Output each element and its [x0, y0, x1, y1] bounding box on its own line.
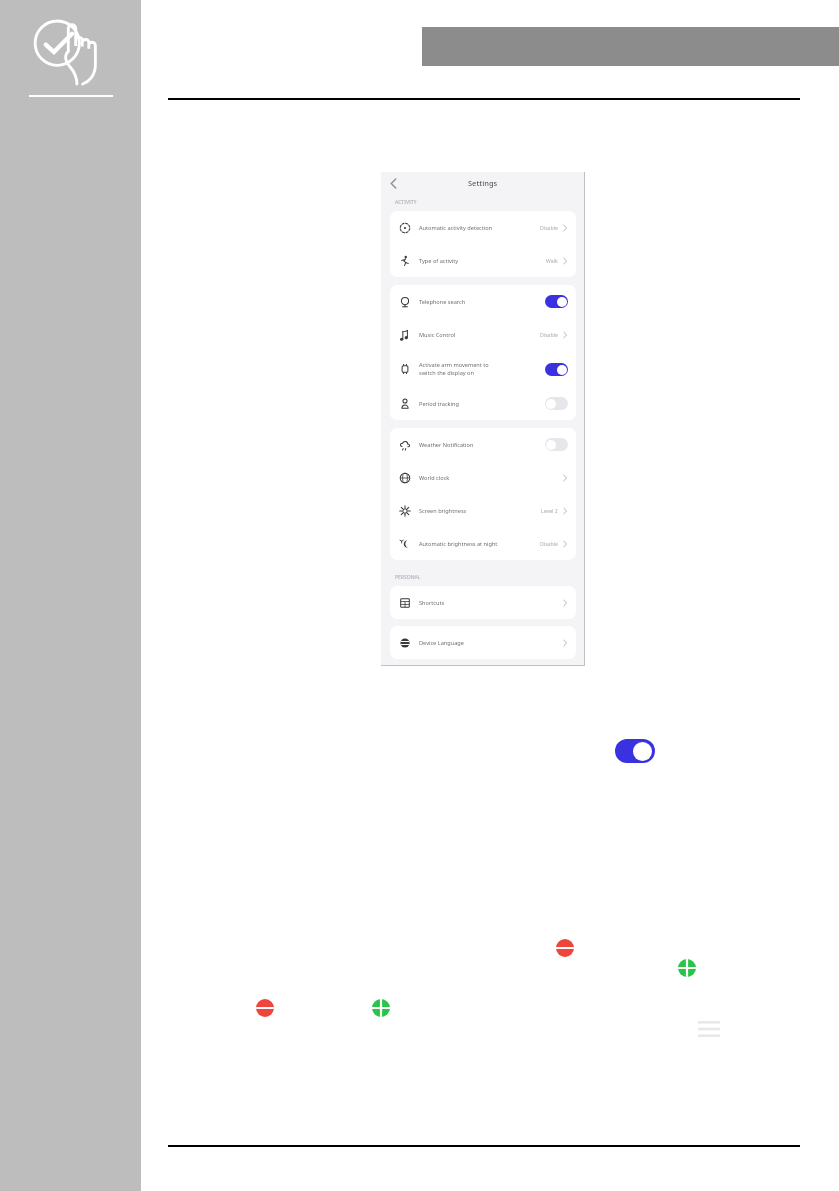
button[interactable]: Music Control [390, 318, 576, 351]
button[interactable]: On [545, 295, 568, 308]
staticText: Music Control [419, 331, 540, 339]
button[interactable]: Automatic brightness at night [390, 527, 576, 560]
staticText: Disable [540, 331, 558, 338]
staticText: Walk [546, 257, 558, 264]
button[interactable]: Weather Notification [390, 428, 576, 461]
button[interactable]: Shortcuts [390, 586, 576, 619]
staticText: PERSONAL [395, 574, 421, 581]
button[interactable]: On [545, 363, 568, 376]
button[interactable]: Off [545, 438, 568, 451]
button[interactable]: Period tracking [390, 387, 576, 420]
button[interactable]: Enabled [370, 997, 392, 1019]
staticText: Disable [540, 540, 558, 547]
button[interactable]: Back [389, 179, 398, 188]
button[interactable]: Toggle on [615, 739, 655, 763]
staticText: Type of activity [419, 257, 546, 265]
button[interactable]: Disabled [554, 937, 576, 959]
staticText: Telephone search [419, 298, 545, 306]
button[interactable]: Menu [698, 1021, 720, 1037]
staticText: ACTIVITY [395, 199, 417, 206]
staticText: Activate arm movement to switch the disp… [419, 361, 545, 377]
button[interactable]: Disabled [254, 997, 276, 1019]
staticText: Weather Notification [419, 441, 545, 449]
staticText: Shortcuts [419, 599, 562, 607]
other: Logo [31, 16, 113, 84]
button[interactable]: Activate arm movement to switch the disp… [390, 351, 576, 387]
button[interactable]: Automatic activity detection [390, 211, 576, 244]
staticText: Screen brightness [419, 507, 541, 515]
staticText: Automatic brightness at night [419, 540, 540, 548]
button[interactable]: World clock [390, 461, 576, 494]
button[interactable]: Device Language [390, 626, 576, 659]
button[interactable]: Telephone search [390, 285, 576, 318]
staticText: Settings [468, 178, 498, 188]
button[interactable]: Type of activity [390, 244, 576, 277]
staticText: Automatic activity detection [419, 224, 540, 232]
staticText: Level 2 [541, 507, 558, 514]
button[interactable]: Off [545, 397, 568, 410]
staticText: Period tracking [419, 400, 545, 408]
staticText: World clock [419, 474, 562, 482]
staticText: Device Language [419, 639, 562, 647]
button[interactable]: Enabled [676, 957, 698, 979]
button[interactable]: Screen brightness [390, 494, 576, 527]
staticText: Disable [540, 224, 558, 231]
